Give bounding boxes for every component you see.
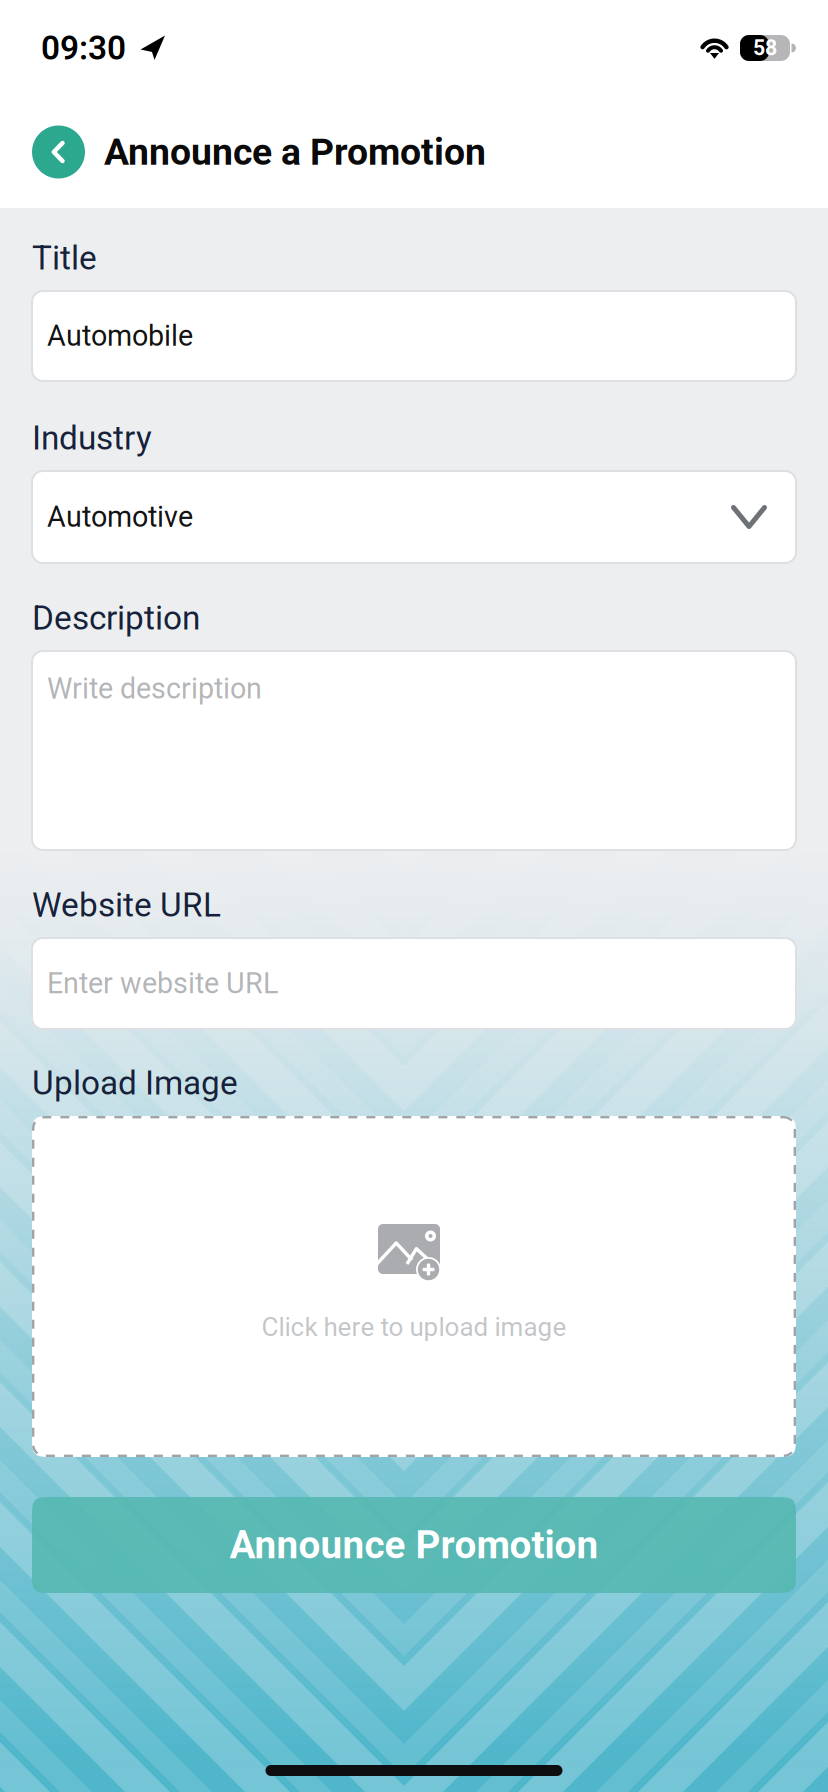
staticText: Announce a Promotion xyxy=(104,130,486,174)
staticText: 09:30 xyxy=(41,28,126,68)
staticText: Write description xyxy=(47,672,262,706)
staticText: Automotive xyxy=(47,500,193,534)
staticText: 58 xyxy=(753,35,777,60)
staticText: Description xyxy=(32,598,200,638)
button[interactable]: Back xyxy=(32,125,85,178)
staticText: Click here to upload image xyxy=(261,1312,566,1342)
staticText: Industry xyxy=(32,418,152,458)
button[interactable]: Click here to upload image xyxy=(32,1116,796,1457)
button[interactable]: Announce Promotion xyxy=(32,1497,796,1593)
staticText: Announce Promotion xyxy=(229,1522,598,1568)
staticText: Upload Image xyxy=(32,1063,238,1103)
button[interactable]: Automotive xyxy=(32,471,796,563)
staticText: Title xyxy=(32,238,97,278)
staticText: Enter website URL xyxy=(47,967,278,1000)
staticText: Website URL xyxy=(32,885,221,925)
staticText: Automobile xyxy=(47,319,193,353)
